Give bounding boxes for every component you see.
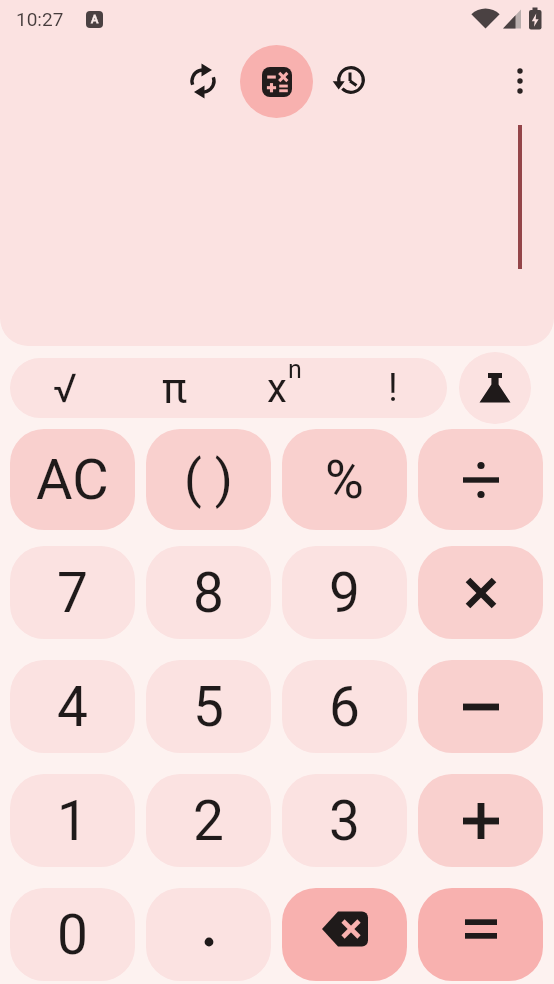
button[interactable] bbox=[418, 429, 543, 530]
staticText: 3 bbox=[329, 789, 360, 853]
staticText: 6 bbox=[329, 675, 360, 739]
button[interactable] bbox=[418, 888, 543, 981]
staticText: ! bbox=[388, 366, 398, 411]
staticText: ( ) bbox=[184, 449, 233, 510]
staticText: x bbox=[267, 365, 287, 412]
staticText: 5 bbox=[193, 675, 224, 739]
button[interactable]: ! bbox=[338, 358, 447, 418]
button[interactable]: AC bbox=[10, 429, 135, 530]
staticText: 8 bbox=[193, 561, 224, 625]
button[interactable]: % bbox=[282, 429, 407, 530]
staticText: 1 bbox=[57, 789, 88, 853]
button[interactable]: 9 bbox=[282, 546, 407, 639]
button[interactable] bbox=[282, 888, 407, 981]
button[interactable] bbox=[459, 352, 531, 424]
button[interactable] bbox=[418, 774, 543, 867]
staticText: 7 bbox=[57, 561, 88, 625]
button[interactable]: 1 bbox=[10, 774, 135, 867]
staticText: √ bbox=[53, 365, 77, 412]
button[interactable] bbox=[240, 45, 313, 118]
button[interactable]: x bbox=[229, 358, 338, 418]
staticText: 9 bbox=[329, 561, 360, 625]
staticText: n bbox=[288, 358, 302, 384]
button[interactable] bbox=[179, 57, 227, 105]
button[interactable]: 6 bbox=[282, 660, 407, 753]
button[interactable] bbox=[496, 57, 544, 105]
staticText: AC bbox=[36, 447, 109, 513]
button[interactable]: 2 bbox=[146, 774, 271, 867]
button[interactable]: 4 bbox=[10, 660, 135, 753]
staticText: 0 bbox=[57, 903, 88, 967]
button[interactable]: √ bbox=[10, 358, 120, 418]
staticText: 4 bbox=[57, 675, 88, 739]
staticText: π bbox=[162, 364, 188, 413]
button[interactable]: ( ) bbox=[146, 429, 271, 530]
button[interactable]: 5 bbox=[146, 660, 271, 753]
button[interactable] bbox=[146, 888, 271, 981]
staticText: 2 bbox=[193, 789, 224, 853]
button[interactable]: 0 bbox=[10, 888, 135, 981]
button[interactable]: π bbox=[120, 358, 229, 418]
button[interactable] bbox=[418, 546, 543, 639]
button[interactable]: 8 bbox=[146, 546, 271, 639]
staticText: % bbox=[325, 449, 364, 511]
button[interactable]: 7 bbox=[10, 546, 135, 639]
button[interactable] bbox=[418, 660, 543, 753]
staticText: 10:27 bbox=[16, 8, 64, 30]
button[interactable] bbox=[326, 57, 374, 105]
button[interactable]: 3 bbox=[282, 774, 407, 867]
staticText: A bbox=[91, 13, 99, 26]
